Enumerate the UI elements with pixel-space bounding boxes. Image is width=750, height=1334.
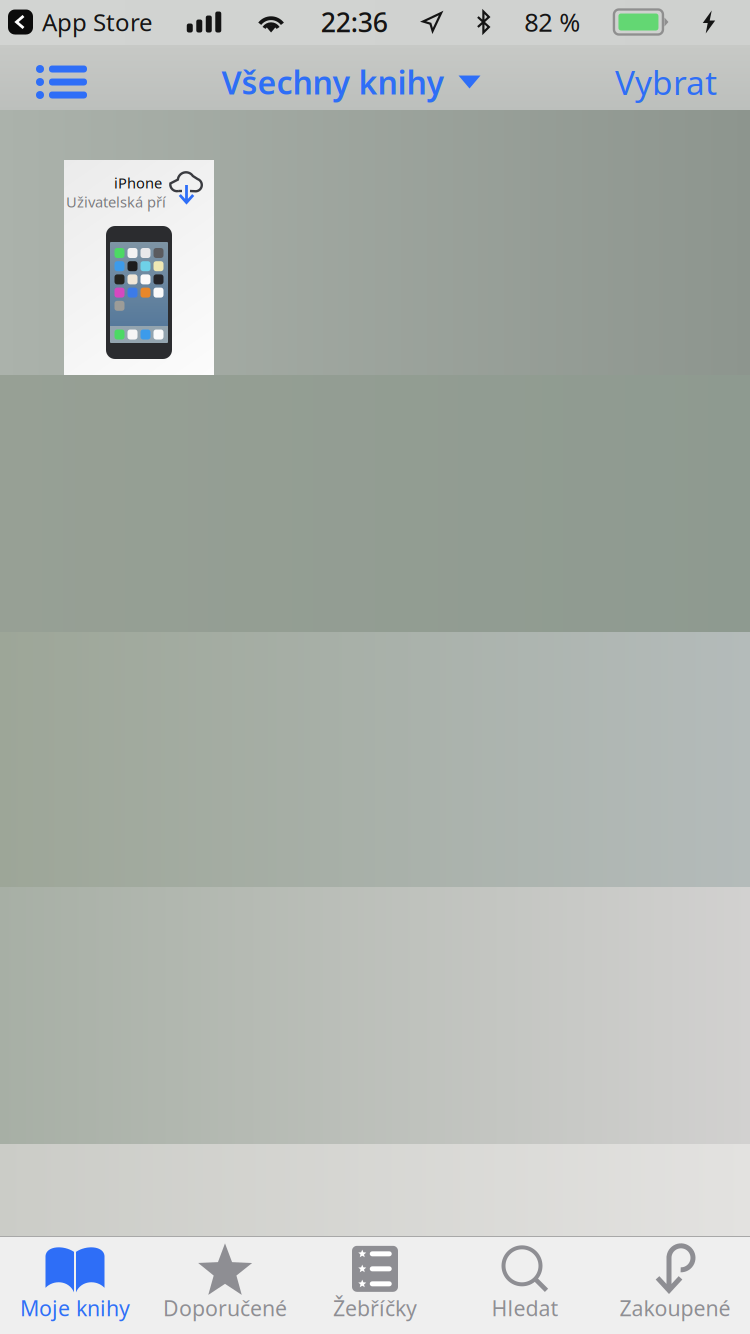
- staticText: 82 %: [524, 5, 580, 39]
- button[interactable]: Všechny knihy: [221, 47, 480, 117]
- button[interactable]: Hledat: [450, 1239, 600, 1332]
- button[interactable]: Moje knihy: [0, 1239, 150, 1332]
- button[interactable]: Vybrat: [597, 44, 750, 120]
- staticText: Zakoupené: [619, 1294, 730, 1322]
- button[interactable]: iPhone: [64, 160, 214, 375]
- staticText: Hledat: [491, 1294, 558, 1322]
- button[interactable]: Žebříčky: [300, 1239, 450, 1332]
- staticText: Moje knihy: [20, 1294, 130, 1322]
- button[interactable]: Library view options: [0, 47, 105, 117]
- button[interactable]: Doporučené: [150, 1239, 300, 1332]
- staticText: iPhone: [114, 173, 162, 192]
- staticText: Doporučené: [163, 1294, 287, 1322]
- staticText: Vybrat: [615, 60, 717, 104]
- staticText: Žebříčky: [333, 1294, 417, 1322]
- staticText: App Store: [42, 6, 153, 38]
- button[interactable]: Back to App Store: [0, 6, 153, 38]
- button[interactable]: Zakoupené: [600, 1239, 750, 1332]
- staticText: Uživatelská pří: [66, 192, 166, 211]
- staticText: Všechny knihy: [221, 61, 444, 103]
- staticText: 22:36: [321, 4, 388, 40]
